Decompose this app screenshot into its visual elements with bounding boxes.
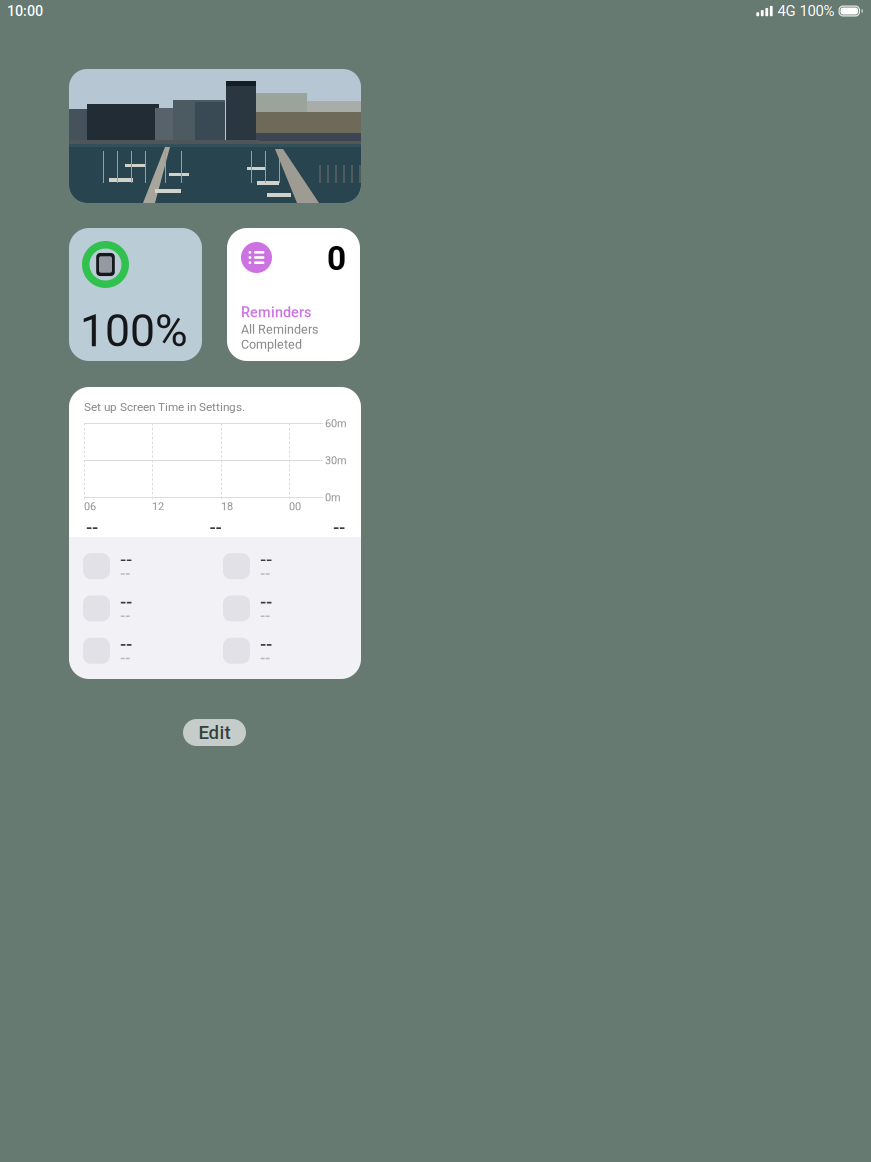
staticText: 60m xyxy=(325,417,347,430)
staticText: -- xyxy=(120,650,130,667)
staticText: 0 xyxy=(327,239,346,278)
staticText: 4G 100% xyxy=(773,2,838,20)
staticText: -- xyxy=(86,517,98,537)
staticText: 10:00 xyxy=(7,3,43,19)
staticText: 30m xyxy=(325,454,347,467)
staticText: 06 xyxy=(84,500,96,513)
staticText: -- xyxy=(120,565,130,582)
staticText: -- xyxy=(120,549,132,569)
staticText: -- xyxy=(260,591,272,612)
staticText: -- xyxy=(120,591,132,612)
button[interactable]: Set up Screen Time in Settings. xyxy=(69,387,361,679)
button[interactable]: 0 xyxy=(227,228,360,361)
staticText: 0m xyxy=(325,491,341,504)
staticText: 12 xyxy=(152,500,164,513)
staticText: -- xyxy=(260,549,272,569)
staticText: -- xyxy=(260,650,270,667)
staticText: 18 xyxy=(221,500,233,513)
staticText: Set up Screen Time in Settings. xyxy=(84,400,245,414)
staticText: -- xyxy=(120,634,132,654)
staticText: -- xyxy=(260,607,270,625)
staticText: -- xyxy=(333,517,345,537)
staticText: 100% xyxy=(80,305,188,357)
staticText: -- xyxy=(260,565,270,582)
button[interactable]: 100% xyxy=(69,228,202,361)
staticText: 00 xyxy=(289,500,301,513)
staticText: Edit xyxy=(198,722,230,743)
staticText: Reminders xyxy=(241,304,311,321)
staticText: -- xyxy=(120,607,130,625)
button[interactable]: Edit xyxy=(183,719,246,746)
staticText: -- xyxy=(260,634,272,654)
staticText: All Reminders xyxy=(241,322,318,337)
staticText: -- xyxy=(209,517,221,537)
staticText: Completed xyxy=(241,337,302,352)
